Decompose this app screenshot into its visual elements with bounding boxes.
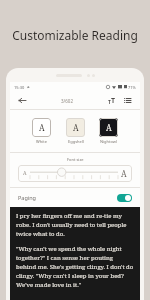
- staticText: Paging: [18, 194, 36, 201]
- staticText: Customizable Reading: [0, 27, 150, 43]
- staticText: "Why can't we spend the whole night toge…: [16, 245, 134, 289]
- button[interactable]: Table of contents: [121, 94, 134, 107]
- button[interactable]: A: [66, 118, 85, 144]
- button[interactable]: Back: [16, 94, 29, 107]
- staticText: 15:30: [14, 85, 25, 90]
- staticText: T: [108, 99, 111, 106]
- button[interactable]: Paging: [10, 188, 140, 207]
- staticText: Eggshell: [68, 139, 84, 144]
- staticText: Nightowl: [100, 139, 117, 144]
- staticText: A: [23, 170, 27, 177]
- button[interactable]: Text size: [105, 94, 118, 107]
- staticText: A: [121, 168, 127, 179]
- button[interactable]: A: [32, 118, 51, 144]
- staticText: T: [111, 96, 116, 106]
- staticText: A: [39, 122, 45, 133]
- staticText: 3/602: [61, 98, 73, 104]
- staticText: A: [106, 122, 112, 133]
- staticText: White: [36, 139, 47, 144]
- staticText: 71%: [128, 85, 136, 90]
- staticText: I pry her fingers off me and re-tie my r…: [16, 212, 134, 238]
- button[interactable]: A: [23, 165, 127, 182]
- button[interactable]: A: [99, 118, 118, 144]
- staticText: A: [73, 122, 79, 133]
- staticText: Font size: [67, 157, 84, 162]
